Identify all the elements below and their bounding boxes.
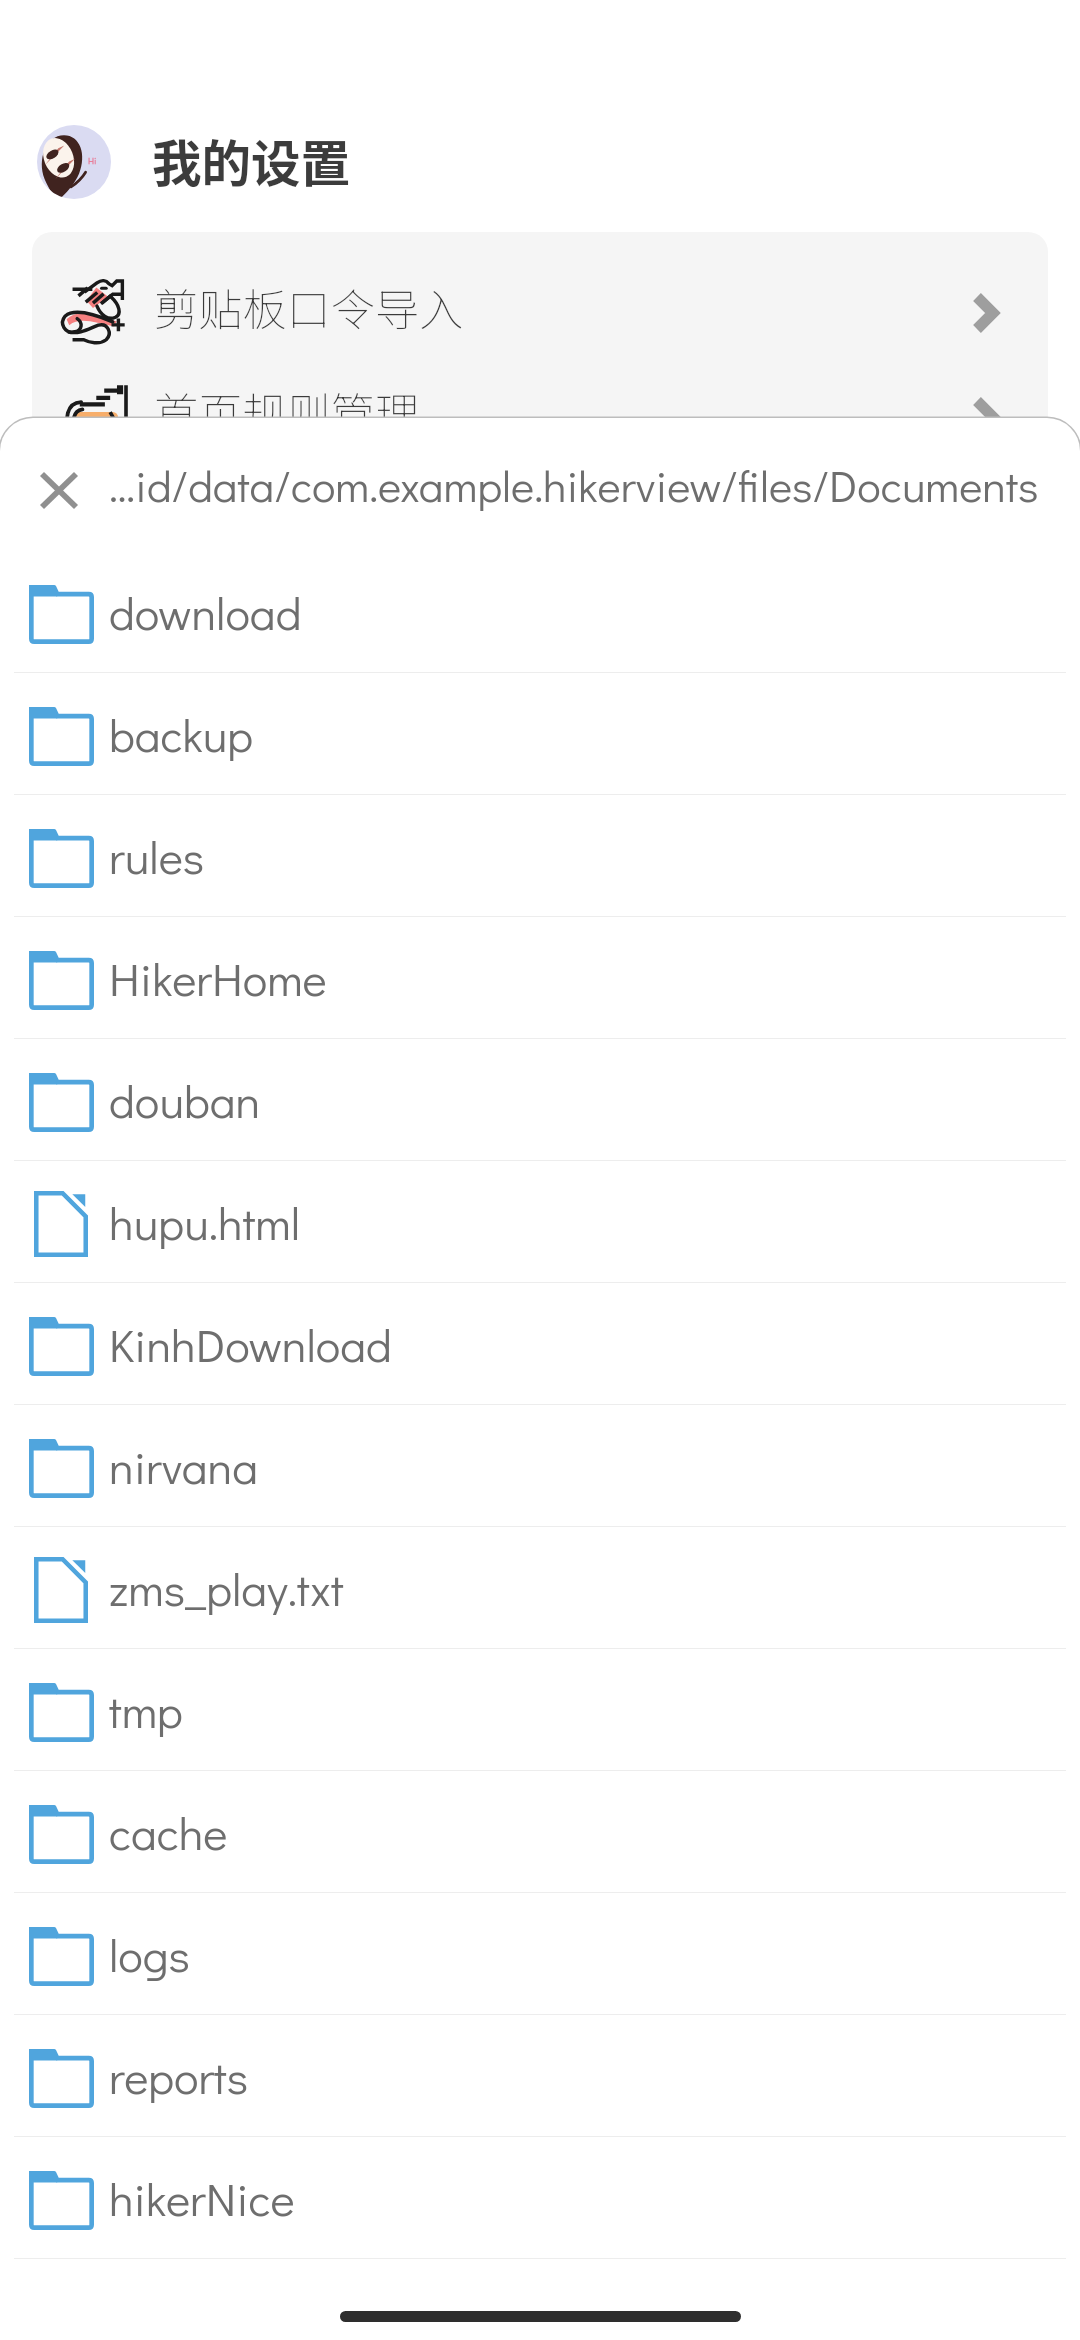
staticText: Hi xyxy=(88,155,97,167)
staticText: reports xyxy=(109,2046,249,2106)
button[interactable]: KinhDownload xyxy=(0,1283,1080,1405)
staticText: tmp xyxy=(109,1680,183,1740)
button[interactable]: Close xyxy=(0,419,110,551)
staticText: rules xyxy=(109,826,205,886)
staticText: hupu.html xyxy=(109,1192,301,1252)
button[interactable]: hikerNice xyxy=(0,2137,1080,2259)
button[interactable]: rules xyxy=(0,795,1080,917)
staticText: 首页规则管理 xyxy=(154,379,420,443)
button[interactable]: logs xyxy=(0,1893,1080,2015)
button[interactable]: download xyxy=(0,551,1080,673)
staticText: hikerNice xyxy=(109,2168,295,2228)
staticText: KinhDownload xyxy=(109,1314,392,1374)
staticText: zms_play.txt xyxy=(109,1558,344,1618)
staticText: nirvana xyxy=(109,1436,258,1496)
button[interactable]: cache xyxy=(0,1771,1080,1893)
staticText: 剪贴板口令导入 xyxy=(154,275,464,339)
button[interactable]: 剪贴板口令导入 xyxy=(32,258,1048,362)
button[interactable]: Profile xyxy=(37,125,111,199)
button[interactable]: tmp xyxy=(0,1649,1080,1771)
button[interactable]: 首页规则管理 xyxy=(32,362,1048,466)
staticText: …id/data/com.example.hikerview/files/Doc… xyxy=(109,456,1039,514)
button[interactable]: hupu.html xyxy=(0,1161,1080,1283)
staticText: 我的收藏 xyxy=(154,483,331,547)
staticText: HikerHome xyxy=(109,948,327,1008)
button[interactable]: 我的收藏 xyxy=(32,466,1048,570)
button[interactable]: zms_play.txt xyxy=(0,1527,1080,1649)
button[interactable]: HikerHome xyxy=(0,917,1080,1039)
staticText: cache xyxy=(109,1802,228,1862)
staticText: download xyxy=(109,582,302,642)
staticText: backup xyxy=(109,704,254,764)
staticText: 我的设置 xyxy=(152,125,350,197)
button[interactable]: douban xyxy=(0,1039,1080,1161)
button[interactable]: reports xyxy=(0,2015,1080,2137)
staticText: logs xyxy=(109,1924,190,1984)
button[interactable]: nirvana xyxy=(0,1405,1080,1527)
button[interactable]: backup xyxy=(0,673,1080,795)
staticText: douban xyxy=(109,1070,261,1130)
